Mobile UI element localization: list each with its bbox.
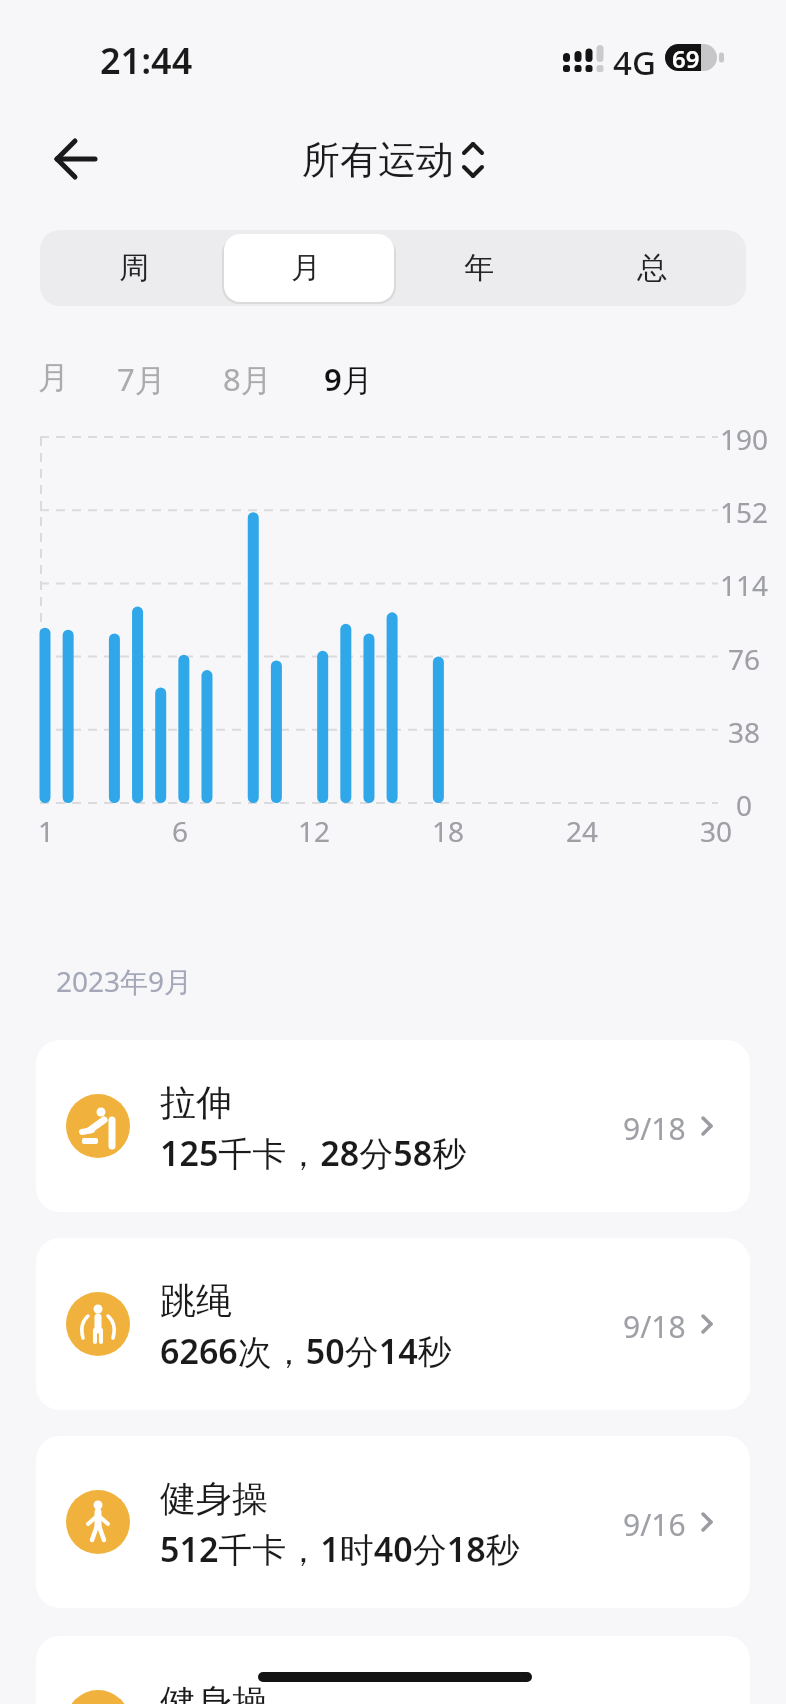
staticText: 6 [172,812,189,846]
staticText: 2023年9月 [56,962,193,1000]
staticText: 月 [291,249,321,287]
staticText: 年 [464,249,494,287]
staticText: 1 [38,812,55,846]
staticText: 18 [432,812,465,846]
staticText: 所有运动 [302,136,454,184]
staticText: 9/16 [623,1504,686,1540]
button[interactable]: 健身操 [36,1436,750,1608]
staticText: 24 [566,812,599,846]
staticText: 健身操 [160,1680,268,1704]
button[interactable]: 月 [220,230,392,306]
staticText: 190 [720,420,769,454]
staticText: 125千卡，28分58秒 [160,1130,467,1176]
staticText: 69 [672,42,700,75]
button[interactable] [50,134,100,184]
staticText: 总 [637,249,667,287]
staticText: 健身操 [160,1476,268,1521]
button[interactable]: 9月 [324,358,373,400]
staticText: 4G [613,40,656,85]
staticText: 152 [720,493,769,527]
button[interactable]: 年 [392,230,565,306]
staticText: 跳绳 [160,1278,232,1323]
staticText: 6266次，50分14秒 [160,1328,452,1374]
staticText: 周 [119,249,149,287]
button[interactable]: 所有运动 [302,136,484,184]
staticText: 9/18 [623,1108,686,1144]
button[interactable]: 跳绳 [36,1238,750,1410]
button[interactable]: 健身操 [36,1636,750,1704]
button[interactable]: 周 [48,230,220,306]
button[interactable]: 7月 [117,358,166,400]
button[interactable]: 月 [38,358,69,397]
staticText: 38 [728,713,761,747]
staticText: 9/18 [623,1306,686,1342]
staticText: 30 [700,812,733,846]
staticText: 512千卡，1时40分18秒 [160,1526,520,1572]
button[interactable]: 总 [565,230,738,306]
staticText: 21:44 [100,36,193,85]
staticText: 0 [736,786,753,820]
staticText: 12 [298,812,331,846]
staticText: 76 [728,640,761,674]
button[interactable]: 拉伸 [36,1040,750,1212]
staticText: 拉伸 [160,1080,232,1125]
button[interactable]: 8月 [223,358,272,400]
staticText: 114 [720,566,769,600]
